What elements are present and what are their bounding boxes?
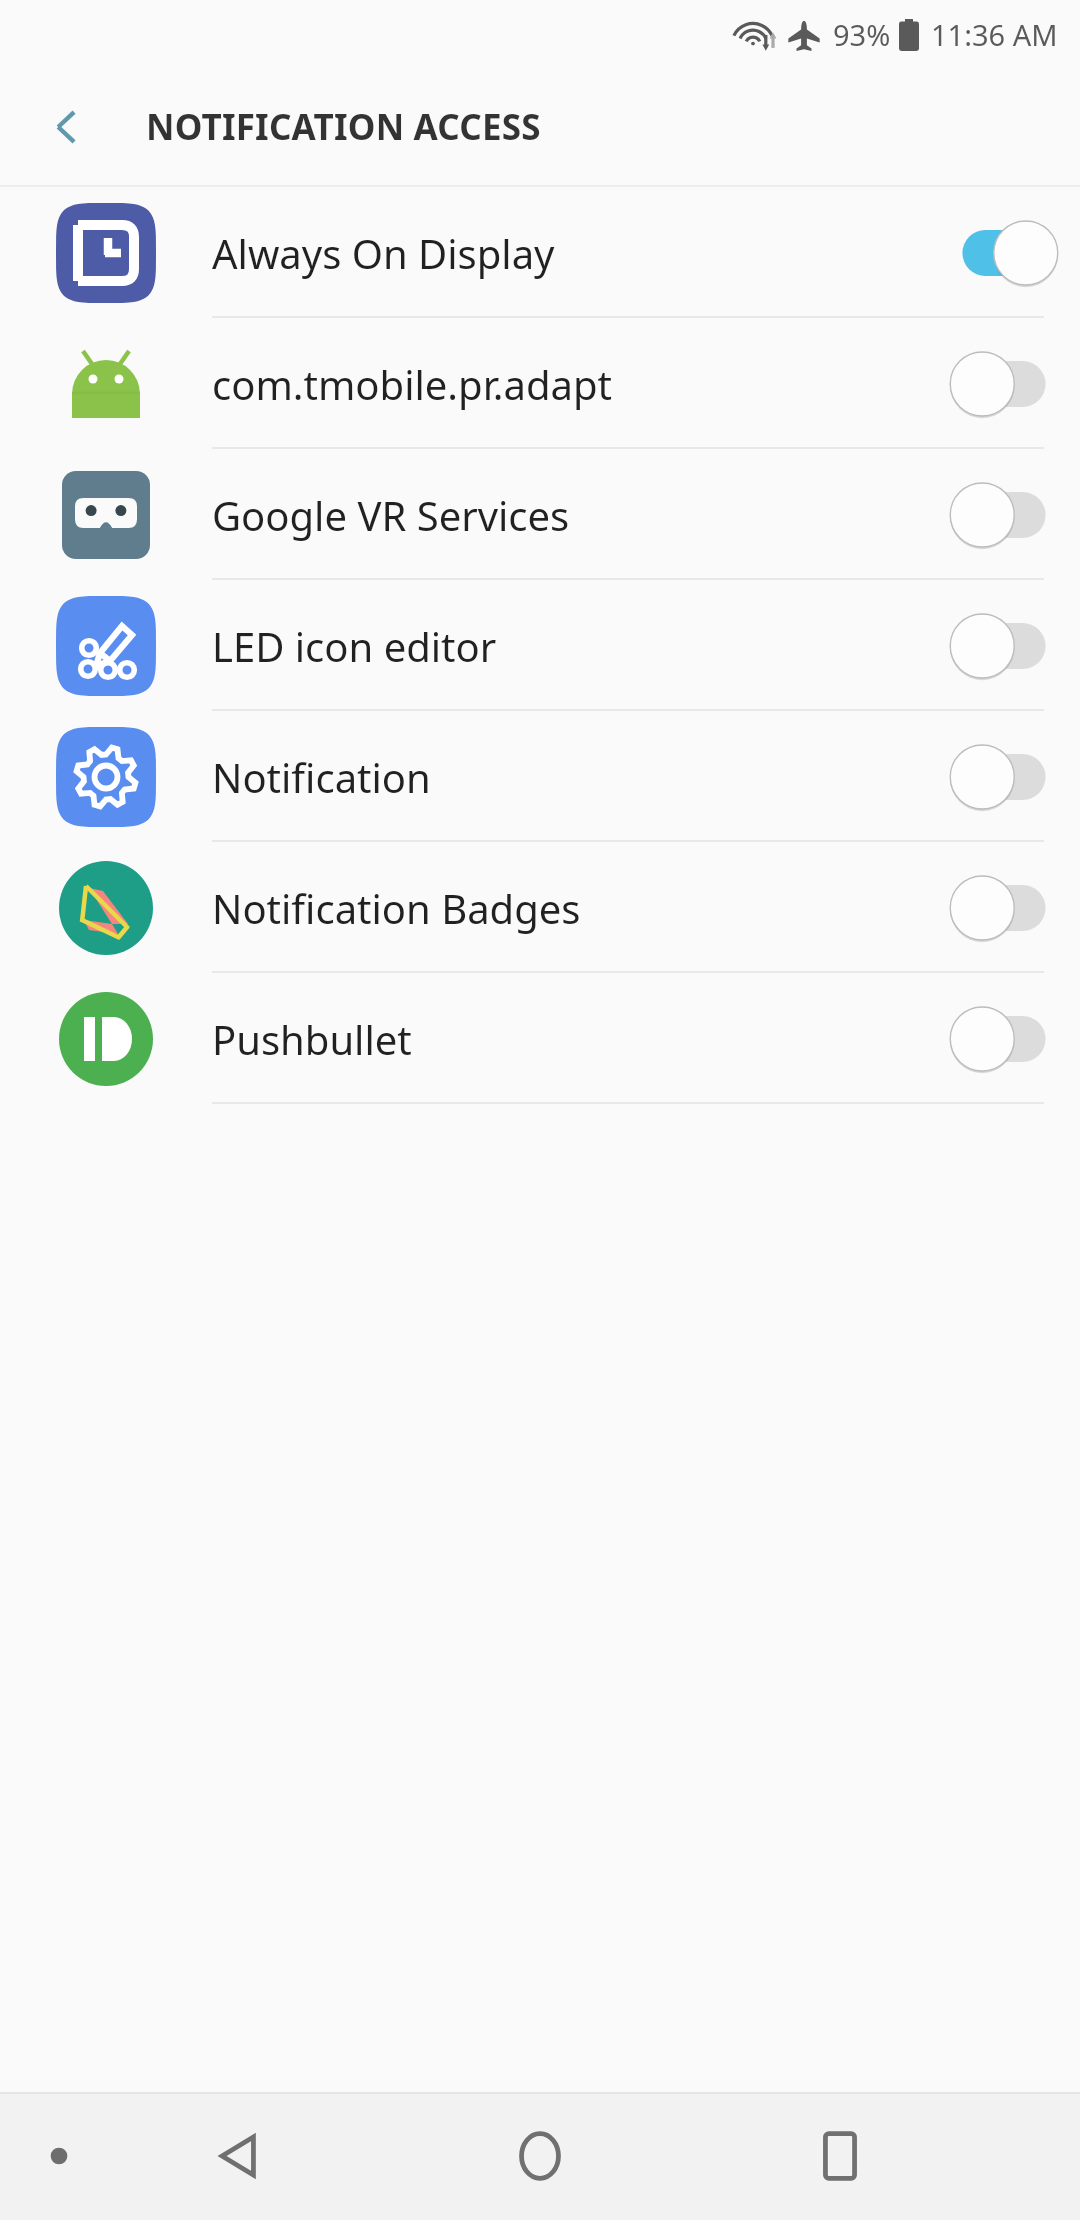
button[interactable]: Toggle off bbox=[944, 863, 1064, 953]
staticText: Pushbullet bbox=[212, 1012, 944, 1066]
button[interactable]: Home bbox=[480, 2096, 600, 2216]
button[interactable]: Notification Badges bbox=[0, 842, 1080, 973]
button[interactable]: Always On Display bbox=[0, 187, 1080, 318]
staticText: com.tmobile.pr.adapt bbox=[212, 357, 944, 411]
button[interactable]: Toggle on bbox=[944, 208, 1064, 298]
staticText: 93% bbox=[833, 15, 891, 54]
button[interactable]: Recent apps bbox=[780, 2096, 900, 2216]
button[interactable]: Notification bbox=[0, 711, 1080, 842]
button[interactable]: Toggle off bbox=[944, 994, 1064, 1084]
staticText: Always On Display bbox=[212, 226, 944, 280]
button[interactable]: LED icon editor bbox=[0, 580, 1080, 711]
staticText: 11:36 AM bbox=[931, 15, 1058, 54]
button[interactable]: Back bbox=[30, 90, 104, 164]
staticText: Notification bbox=[212, 750, 944, 804]
button[interactable]: com.tmobile.pr.adapt bbox=[0, 318, 1080, 449]
button[interactable]: Toggle off bbox=[944, 601, 1064, 691]
staticText: NOTIFICATION ACCESS bbox=[146, 103, 541, 151]
button[interactable]: Back bbox=[180, 2096, 300, 2216]
staticText: LED icon editor bbox=[212, 619, 944, 673]
button[interactable]: Toggle off bbox=[944, 470, 1064, 560]
button[interactable]: Toggle off bbox=[944, 339, 1064, 429]
button[interactable]: Google VR Services bbox=[0, 449, 1080, 580]
button[interactable]: Toggle off bbox=[944, 732, 1064, 822]
staticText: Notification Badges bbox=[212, 881, 944, 935]
button[interactable]: Pushbullet bbox=[0, 973, 1080, 1104]
staticText: Google VR Services bbox=[212, 488, 944, 542]
